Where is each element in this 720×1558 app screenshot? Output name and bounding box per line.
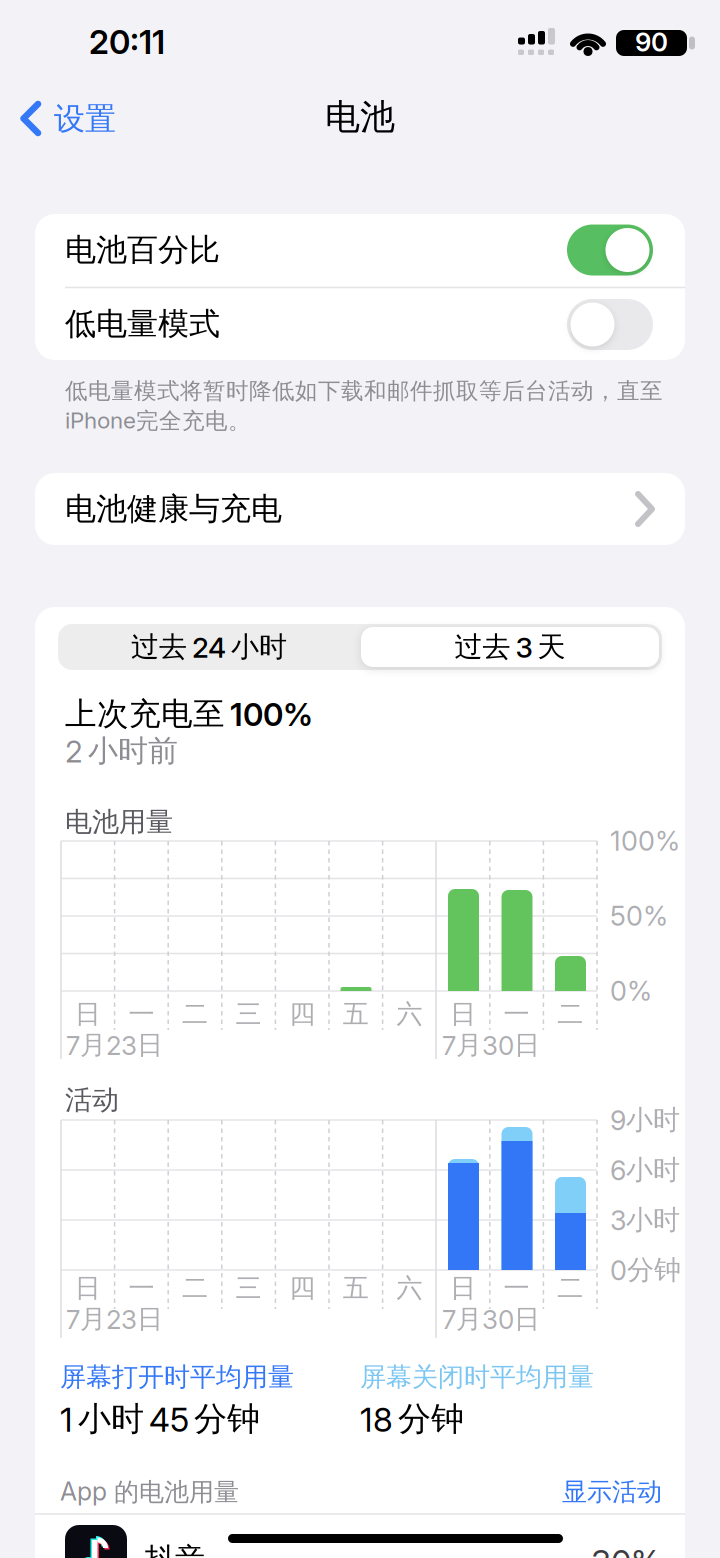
staticText: 一 [128,1272,154,1304]
staticText: 0分钟 [610,1253,681,1287]
staticText: 日 [75,998,101,1030]
staticText: 四 [289,1272,315,1304]
staticText: 二 [182,1272,208,1304]
button[interactable]: 抖音 [35,1515,685,1558]
staticText: 7月30日 [442,1303,540,1335]
staticText: 50% [610,900,668,932]
staticText: 1 小时 45 分钟 [60,1399,260,1439]
staticText: 设置 [54,100,116,138]
staticText: 低电量模式 [65,305,220,343]
staticText: iPhone完全充电。 [65,407,251,435]
staticText: 五 [343,1272,369,1304]
staticText: 二 [182,998,208,1030]
staticText: 二 [557,1272,583,1304]
staticText: 6小时 [610,1153,680,1187]
staticText: 三 [236,1272,262,1304]
staticText: 18 分钟 [360,1399,464,1439]
staticText: App 的电池用量 [60,1477,239,1507]
staticText: 三 [236,998,262,1030]
staticText: 二 [557,998,583,1030]
staticText: 电池健康与充电 [65,490,282,528]
button[interactable]: 显示活动 [522,1476,662,1508]
staticText: 3小时 [610,1203,680,1237]
staticText: 电池百分比 [65,231,220,269]
button[interactable]: 过去 24 小时 [58,624,360,670]
staticText: 100% [610,825,680,857]
staticText: 上次充电至 100% [65,695,313,733]
button[interactable]: 低电量模式 [35,287,685,360]
button[interactable]: 返回设置 [20,98,170,138]
staticText: 7月30日 [442,1029,540,1061]
staticText: 过去 24 小时 [131,630,287,664]
staticText: 屏幕打开时平均用量 [60,1361,294,1393]
staticText: 20:11 [89,22,165,61]
staticText: 2 小时前 [65,733,178,769]
staticText: 一 [504,1272,530,1304]
staticText: 日 [450,998,476,1030]
staticText: 7月23日 [66,1303,163,1335]
staticText: 过去 3 天 [454,630,565,664]
staticText: 六 [396,1272,422,1304]
staticText: 抖音 [145,1541,205,1558]
staticText: 四 [289,998,315,1030]
button[interactable]: 电池健康与充电 [35,473,685,545]
staticText: 一 [128,998,154,1030]
staticText: 六 [396,998,422,1030]
staticText: 30% [591,1542,661,1558]
staticText: 90 [635,27,668,57]
staticText: 屏幕关闭时平均用量 [360,1361,594,1393]
staticText: 一 [504,998,530,1030]
button[interactable]: 电池百分比 [35,214,685,287]
staticText: 日 [75,1272,101,1304]
staticText: 电池用量 [65,805,173,839]
staticText: 低电量模式将暂时降低如下载和邮件抓取等后台活动，直至 [65,377,663,405]
button[interactable]: 过去 3 天 [361,627,659,667]
staticText: 活动 [65,1083,119,1117]
staticText: 五 [343,998,369,1030]
staticText: 日 [450,1272,476,1304]
staticText: 0% [610,975,652,1007]
staticText: 电池 [325,95,395,138]
staticText: 显示活动 [562,1477,662,1507]
staticText: 7月23日 [66,1029,163,1061]
staticText: 9小时 [610,1103,680,1137]
